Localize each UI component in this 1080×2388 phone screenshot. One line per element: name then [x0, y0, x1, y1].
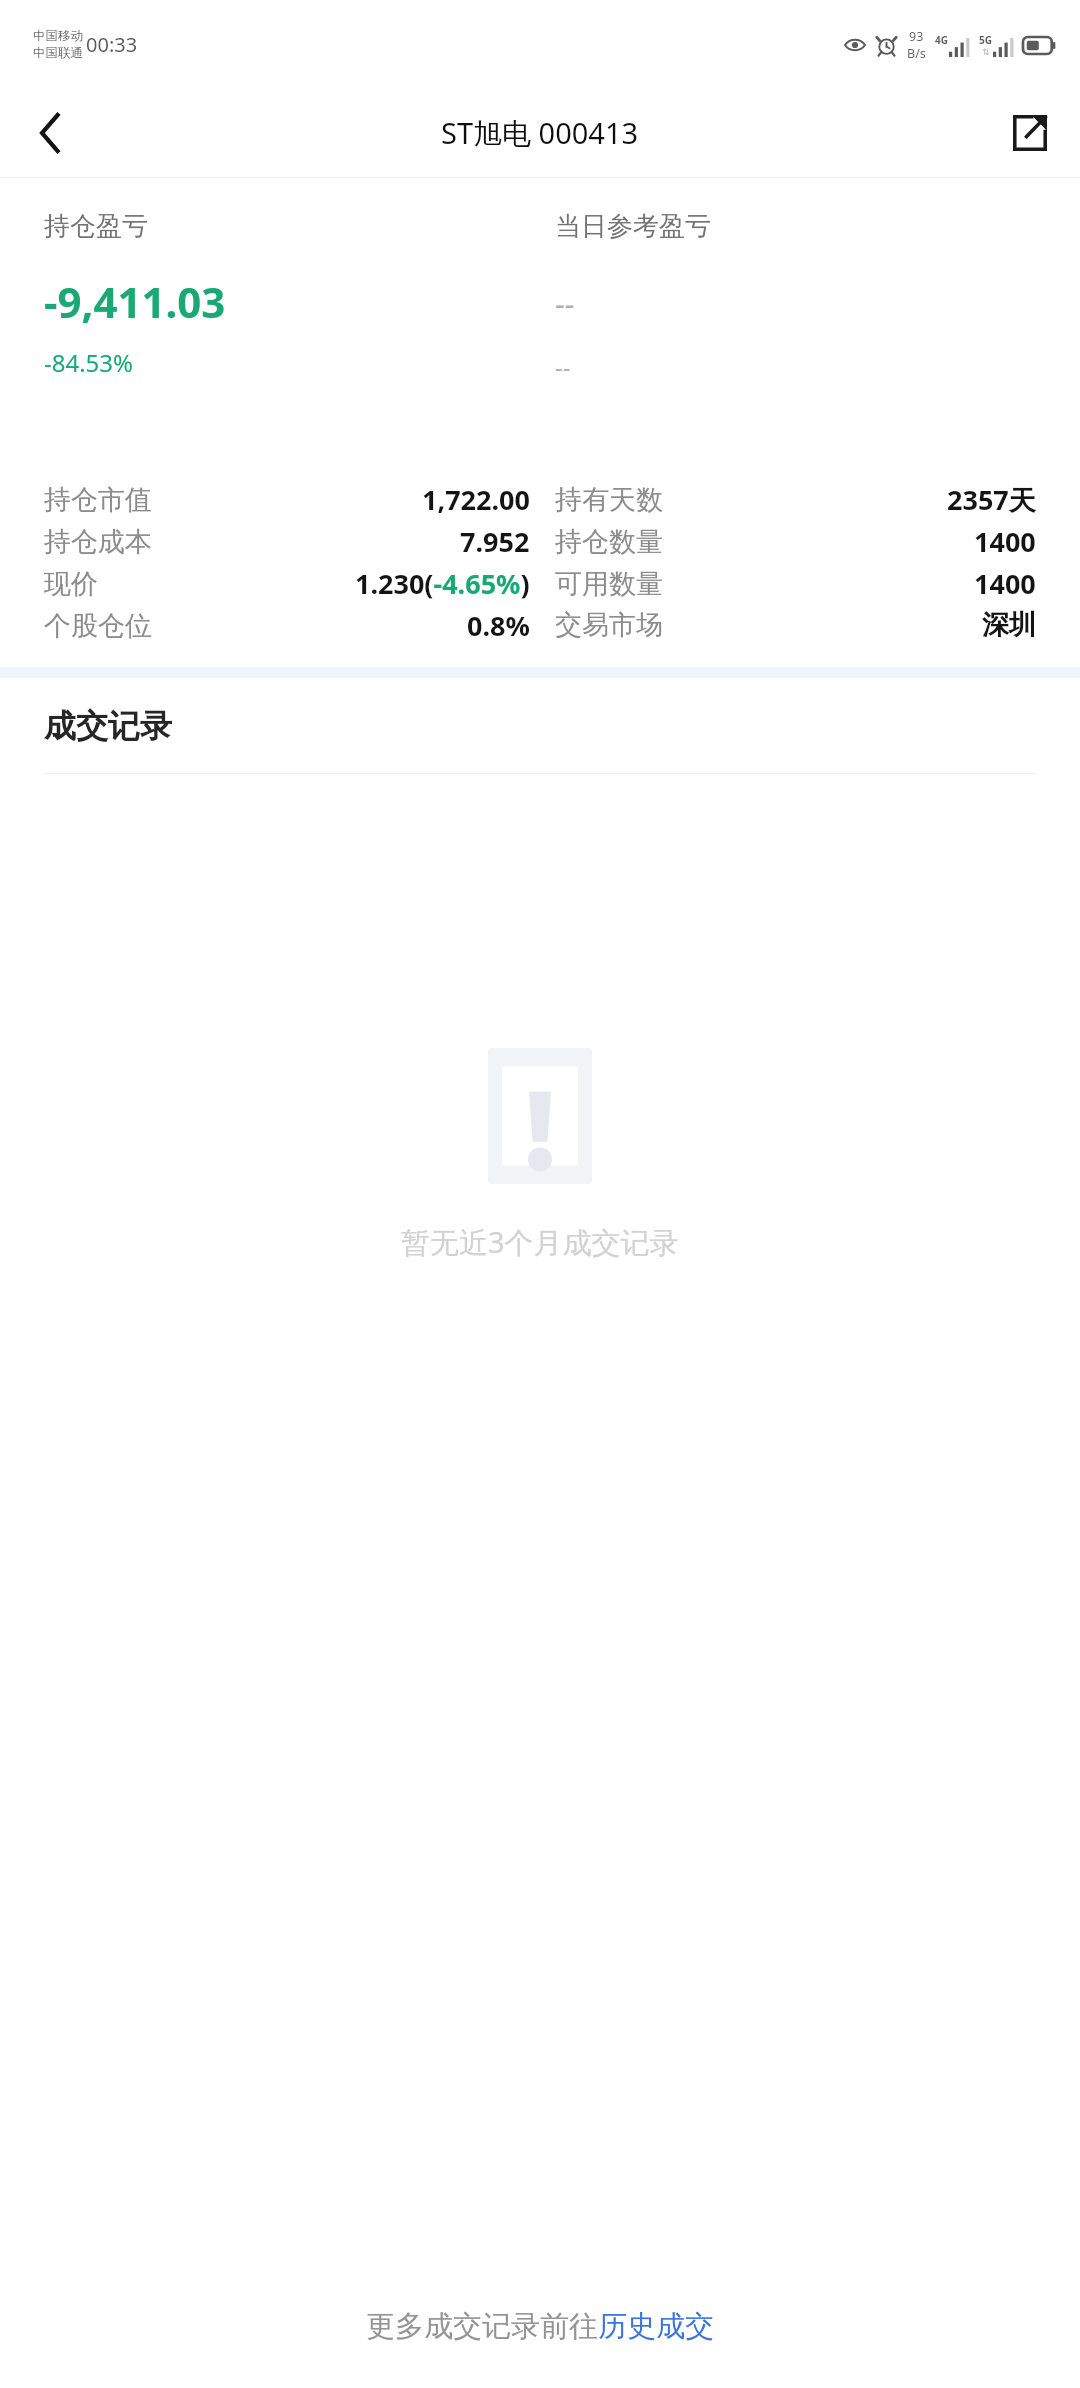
staticText: 1400 — [974, 565, 1036, 602]
staticText: 1,722.00 — [422, 481, 530, 518]
staticText: ⇅ — [982, 47, 990, 57]
staticText: -84.53% — [44, 346, 134, 379]
staticText: 持仓成本 — [44, 525, 152, 559]
button[interactable]: Share — [994, 97, 1066, 169]
staticText: 4G — [935, 33, 948, 47]
staticText: 更多成交记录前往历史成交 — [366, 2308, 714, 2345]
staticText: 个股仓位 — [44, 609, 152, 643]
staticText: 可用数量 — [555, 567, 663, 601]
staticText: 1.230(-4.65%) — [355, 565, 530, 602]
staticText: 5G — [979, 33, 992, 47]
staticText: 中国移动 — [33, 28, 83, 44]
staticText: -9,411.03 — [44, 273, 226, 330]
staticText: B/s — [907, 45, 926, 62]
staticText: -- — [555, 283, 575, 324]
staticText: 当日参考盈亏 — [555, 210, 711, 243]
staticText: 1400 — [974, 523, 1036, 560]
staticText: 中国联通 — [33, 45, 83, 61]
staticText: 成交记录 — [44, 706, 172, 746]
staticText: 00:33 — [86, 31, 138, 58]
staticText: 持有天数 — [555, 483, 663, 517]
button[interactable]: 更多成交记录前往历史成交 — [366, 2308, 714, 2345]
staticText: 7.952 — [460, 523, 530, 560]
staticText: 93 — [909, 28, 924, 45]
staticText: 现价 — [44, 567, 98, 601]
staticText: 暂无近3个月成交记录 — [401, 1222, 679, 1262]
staticText: 交易市场 — [555, 608, 663, 642]
staticText: -- — [555, 350, 571, 383]
staticText: 持仓数量 — [555, 525, 663, 559]
staticText: 2357天 — [947, 481, 1036, 518]
staticText: 持仓盈亏 — [44, 210, 148, 243]
staticText: ST旭电 000413 — [441, 113, 639, 153]
staticText: 0.8% — [467, 607, 530, 644]
button[interactable]: Back — [14, 97, 86, 169]
staticText: 持仓市值 — [44, 483, 152, 517]
staticText: 深圳 — [982, 608, 1036, 642]
